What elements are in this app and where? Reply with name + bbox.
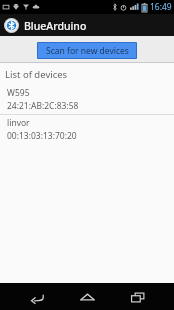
staticText: 16:49 (150, 1, 172, 13)
staticText: List of devices (5, 68, 68, 81)
staticText: 24:21:AB:2C:83:58 (7, 100, 79, 112)
button[interactable]: Recent apps (118, 285, 158, 309)
staticText: BlueArduino (24, 19, 87, 33)
button[interactable]: Back (17, 285, 57, 309)
other: App icon (4, 18, 19, 33)
button[interactable]: Scan for new devices (37, 42, 137, 59)
button[interactable]: W595 (0, 85, 174, 114)
button[interactable]: linvor (0, 115, 174, 144)
button[interactable]: Home (67, 285, 107, 309)
staticText: linvor (7, 117, 30, 129)
staticText: Scan for new devices (46, 45, 129, 57)
staticText: W595 (7, 87, 30, 99)
staticText: 00:13:03:13:70:20 (7, 130, 77, 142)
